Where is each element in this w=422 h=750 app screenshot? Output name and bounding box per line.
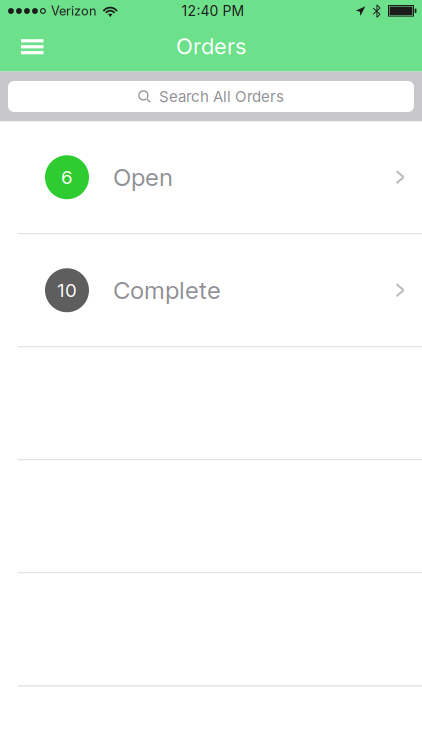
staticText: 6: [61, 166, 73, 189]
staticText: Orders: [176, 33, 246, 59]
staticText: 10: [57, 279, 77, 302]
button[interactable]: Search All Orders: [8, 81, 414, 112]
button[interactable]: 6: [0, 121, 422, 233]
staticText: Search All Orders: [159, 87, 284, 106]
staticText: Verizon: [51, 3, 96, 19]
staticText: 12:40 PM: [181, 2, 244, 19]
staticText: Complete: [113, 276, 221, 305]
button[interactable]: Menu: [0, 25, 54, 69]
button[interactable]: 10: [0, 234, 422, 346]
staticText: Open: [113, 163, 173, 192]
